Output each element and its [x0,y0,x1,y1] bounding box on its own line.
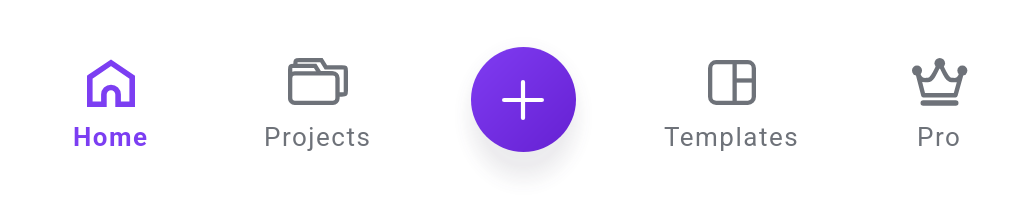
button[interactable]: Create new [471,47,576,152]
other: Templates [708,60,756,105]
button[interactable]: Templates [647,38,817,168]
button[interactable]: Home [26,38,196,168]
button[interactable]: Projects [233,38,403,168]
staticText: Templates [664,122,800,152]
button[interactable]: Pro [854,38,1024,168]
other: Pro [912,58,967,105]
staticText: Home [73,122,149,152]
staticText: Projects [264,122,372,152]
other: Projects [288,58,348,105]
staticText: Pro [917,122,962,152]
other: Home [87,60,135,107]
